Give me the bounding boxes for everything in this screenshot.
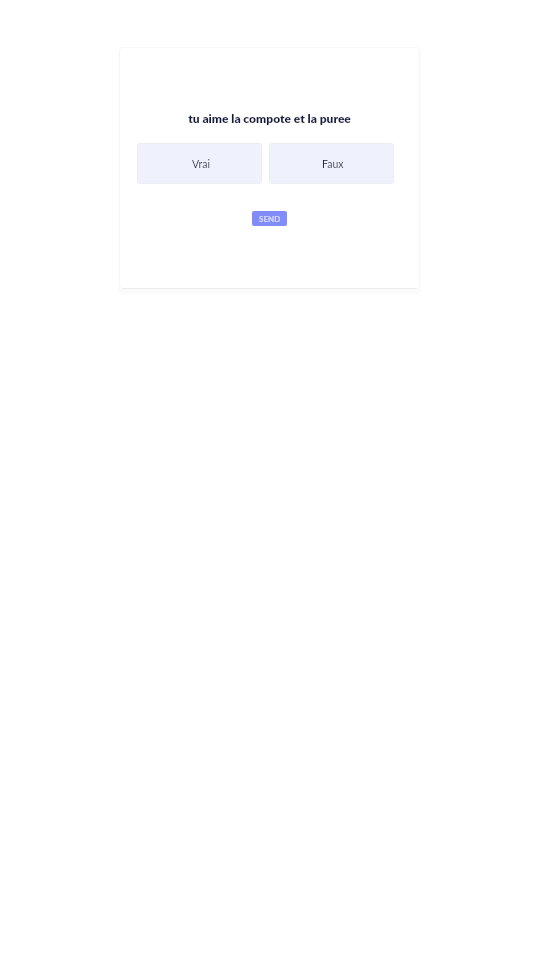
staticText: SEND — [259, 214, 281, 224]
staticText: Vrai — [192, 158, 210, 171]
button[interactable]: Vrai — [137, 143, 262, 184]
staticText: tu aime la compote et la puree — [188, 111, 351, 125]
button[interactable]: Send answer — [252, 211, 287, 226]
staticText: Faux — [322, 158, 344, 171]
button[interactable]: Faux — [269, 143, 394, 184]
